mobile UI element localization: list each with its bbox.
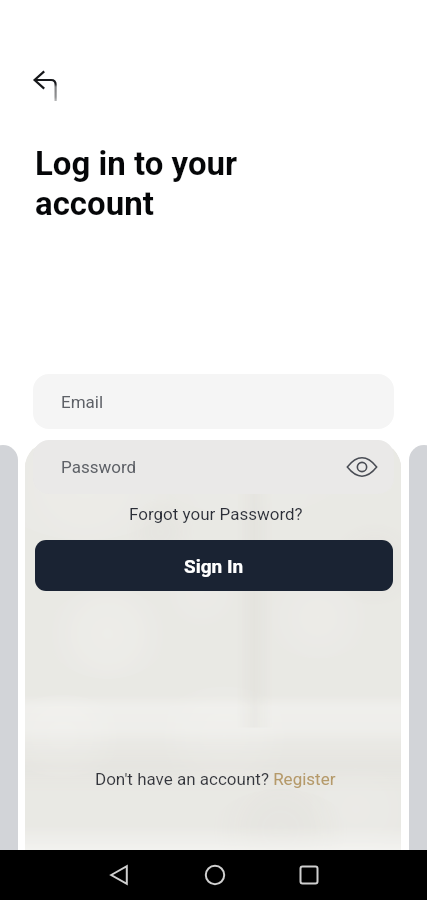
staticText: Email xyxy=(61,392,104,412)
staticText: Sign In xyxy=(184,555,244,577)
button[interactable]: Forgot your Password? xyxy=(120,498,312,530)
button[interactable]: Sign In xyxy=(35,540,393,591)
staticText: Don't have an account? Register xyxy=(95,769,336,789)
button[interactable]: Don't have an account? Register xyxy=(88,766,342,792)
button[interactable]: Home xyxy=(167,850,263,900)
staticText: Log in to your account xyxy=(35,144,238,224)
staticText: Forgot your Password? xyxy=(129,504,303,524)
staticText: Password xyxy=(61,457,137,477)
button[interactable]: Back xyxy=(71,850,167,900)
button[interactable]: Recents xyxy=(261,850,357,900)
button[interactable]: Back xyxy=(30,62,78,110)
button[interactable]: Show password xyxy=(344,449,380,485)
button[interactable]: Password xyxy=(33,440,394,494)
button[interactable]: Email xyxy=(33,374,394,429)
